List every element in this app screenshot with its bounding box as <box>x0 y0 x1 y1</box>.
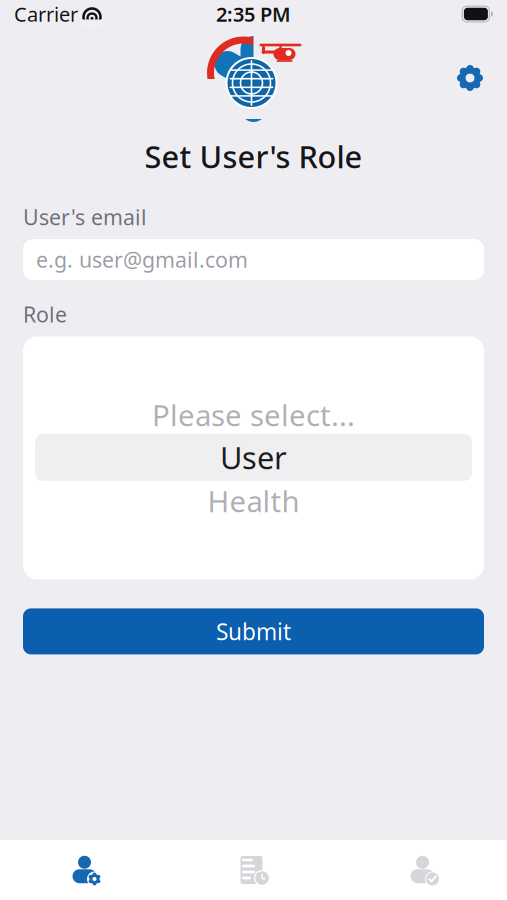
staticText: 2:35 PM <box>216 1 291 27</box>
button[interactable]: User <box>35 434 472 481</box>
button[interactable]: Please select... <box>23 398 484 432</box>
staticText: Set User's Role <box>144 136 362 177</box>
staticText: Health <box>207 481 299 520</box>
button[interactable]: Settings <box>447 55 493 101</box>
staticText: User's email <box>23 203 147 231</box>
staticText: e.g. user@gmail.com <box>36 245 248 274</box>
staticText: Submit <box>216 616 291 646</box>
staticText: Carrier <box>14 1 78 27</box>
button[interactable]: Submit <box>23 608 484 654</box>
button[interactable]: Set user's role <box>0 841 169 899</box>
button[interactable]: History <box>169 841 338 899</box>
staticText: Role <box>23 300 67 328</box>
staticText: User <box>220 437 287 478</box>
button[interactable]: Approvals <box>338 841 507 899</box>
button[interactable]: Health <box>23 484 484 518</box>
staticText: Please select... <box>152 395 355 434</box>
